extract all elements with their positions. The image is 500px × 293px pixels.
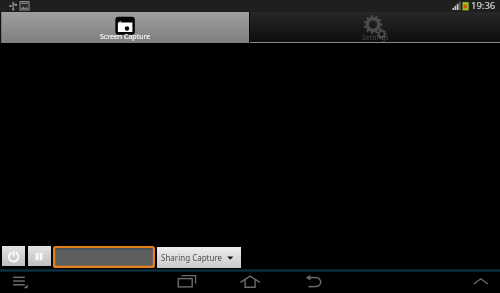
staticText: 19:36	[471, 0, 496, 11]
button[interactable]: Pause	[28, 246, 51, 266]
button[interactable]: Expand	[462, 270, 500, 293]
button[interactable]: Stop recording	[2, 246, 25, 266]
staticText: Settings	[362, 33, 389, 43]
button[interactable]: Back	[293, 270, 337, 293]
button[interactable]: Settings	[250, 12, 500, 43]
button[interactable]: Menu	[0, 270, 60, 293]
staticText: Sharing Capture	[161, 252, 223, 263]
button[interactable]: Recent apps	[160, 270, 210, 293]
button[interactable]: Screen Capture	[0, 12, 249, 43]
button[interactable]: Home	[228, 270, 274, 293]
button[interactable]: Sharing Capture	[157, 247, 241, 268]
staticText: Screen Capture	[100, 32, 151, 42]
button[interactable]	[53, 246, 155, 268]
